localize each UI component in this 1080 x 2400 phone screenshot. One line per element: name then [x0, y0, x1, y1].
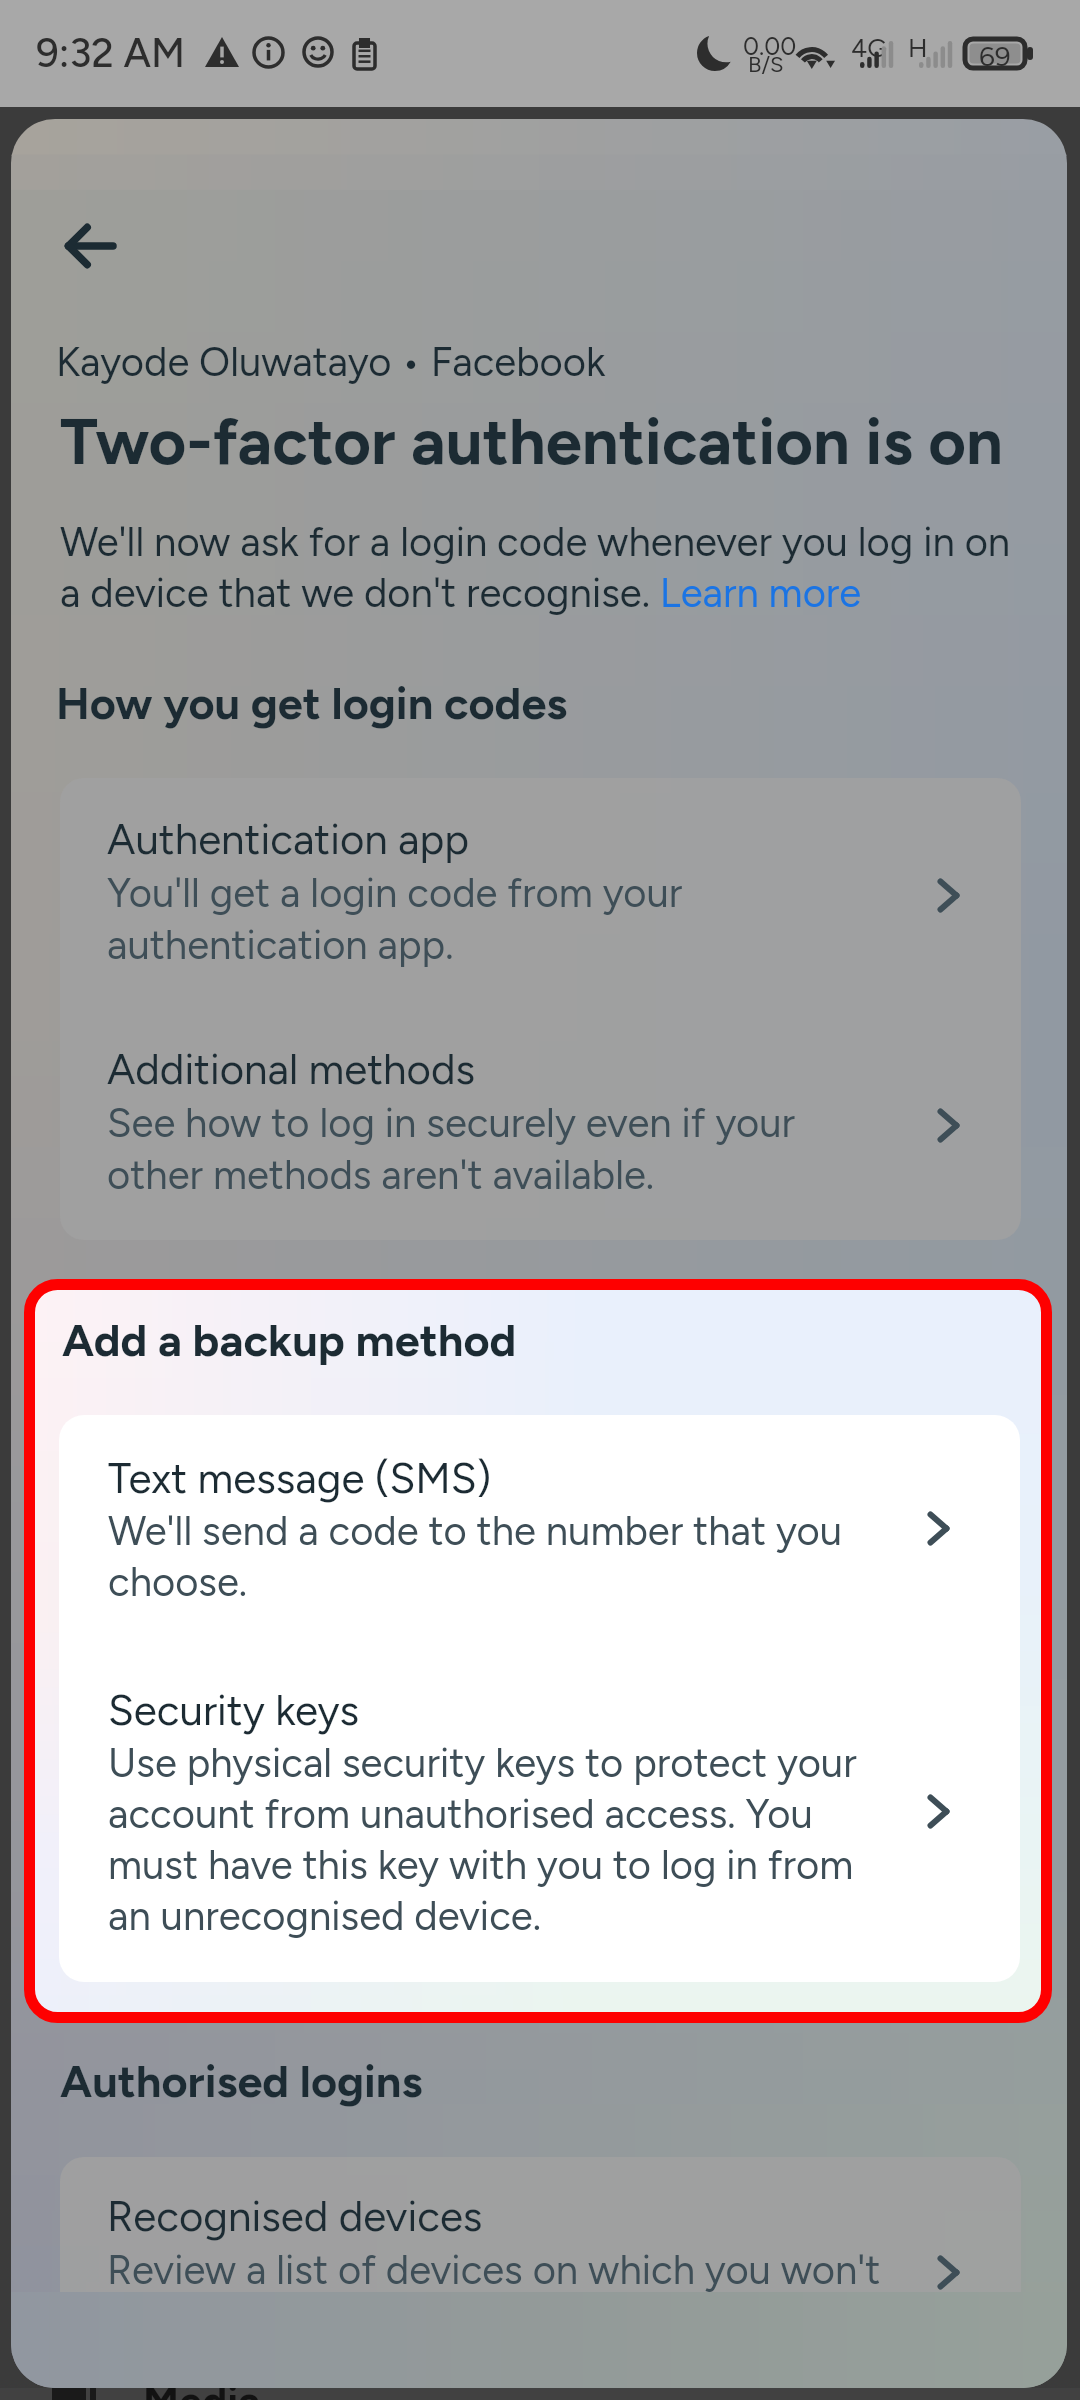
staticText: Add a backup method	[62, 1312, 517, 1368]
button[interactable]: Authentication app	[107, 810, 947, 970]
staticText: Security keys	[108, 1681, 360, 1737]
staticText: B/S	[748, 51, 784, 78]
staticText: You'll get a login code from your authen…	[107, 866, 683, 970]
button[interactable]: Back	[30, 186, 150, 306]
staticText: Authorised logins	[60, 2053, 423, 2109]
staticText: Review a list of devices on which you wo…	[107, 2243, 881, 2295]
staticText: Two-factor authentication is on	[60, 402, 1055, 480]
staticText: Additional methods	[107, 1040, 476, 1096]
button[interactable]: Additional methods	[107, 1040, 947, 1200]
staticText: Media	[143, 2375, 261, 2400]
staticText: We'll send a code to the number that you…	[108, 1505, 843, 1607]
staticText: We'll now ask for a login code whenever …	[60, 516, 1028, 618]
button[interactable]: Recognised devices	[107, 2187, 947, 2295]
staticText: See how to log in securely even if your …	[107, 1096, 796, 1200]
staticText: Authentication app	[107, 810, 470, 866]
staticText: Text message (SMS)	[108, 1449, 492, 1505]
staticText: Use physical security keys to protect yo…	[108, 1737, 857, 1941]
staticText: 4G	[851, 32, 887, 64]
staticText: 9:32 AM	[36, 27, 186, 77]
button[interactable]: Security keys	[108, 1681, 938, 1941]
staticText: 0.00	[743, 30, 797, 61]
staticText: H	[908, 32, 928, 64]
button[interactable]: Text message (SMS)	[108, 1449, 938, 1607]
staticText: How you get login codes	[56, 675, 568, 731]
button[interactable]: Media	[47, 2375, 261, 2400]
staticText: 69	[979, 38, 1011, 73]
staticText: Kayode Oluwatayo • Facebook	[56, 336, 606, 386]
staticText: Recognised devices	[107, 2187, 483, 2243]
